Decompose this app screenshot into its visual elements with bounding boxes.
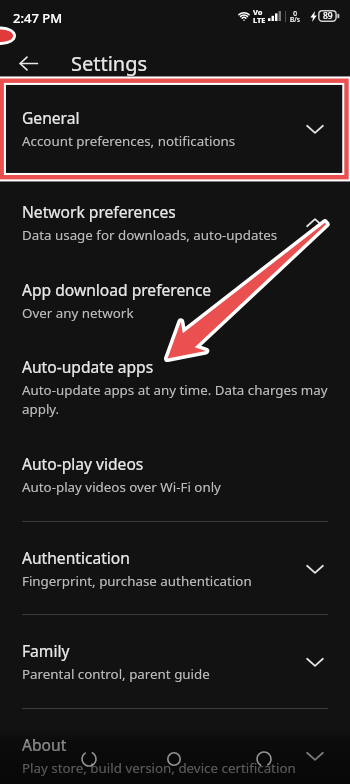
staticText: General [22, 107, 80, 128]
button[interactable]: Back [68, 738, 110, 780]
button[interactable]: Network preferences [0, 201, 350, 244]
staticText: Data usage for downloads, auto-updates [22, 226, 278, 244]
button[interactable]: Family [0, 640, 350, 683]
button[interactable]: Auto-update apps [0, 356, 350, 418]
button[interactable]: About [0, 734, 350, 777]
staticText: Auto-play videos [22, 453, 144, 474]
staticText: 2:47 PM [13, 9, 63, 27]
staticText: Account preferences, notifications [22, 132, 236, 150]
staticText: Settings [71, 50, 148, 77]
staticText: Family [22, 640, 70, 661]
staticText: 89 [323, 10, 333, 22]
staticText: 0 B/s [290, 9, 300, 24]
staticText: Play store, build version, device certif… [22, 759, 296, 777]
staticText: Vo LTE [253, 7, 266, 25]
staticText: Fingerprint, purchase authentication [22, 572, 252, 590]
button[interactable]: App download preference [0, 279, 350, 322]
staticText: Network preferences [22, 201, 176, 222]
staticText: App download preference [22, 279, 212, 300]
button[interactable]: Home [153, 738, 195, 780]
button[interactable]: Back [8, 43, 48, 83]
staticText: Auto-update apps at any time. Data charg… [22, 381, 329, 418]
staticText: Over any network [22, 304, 134, 322]
button[interactable]: General [0, 107, 350, 150]
staticText: Parental control, parent guide [22, 665, 210, 683]
staticText: Auto-play videos over Wi-Fi only [22, 478, 221, 496]
button[interactable]: Authentication [0, 547, 350, 590]
button[interactable]: Auto-play videos [0, 453, 350, 496]
staticText: Auto-update apps [22, 356, 154, 377]
button[interactable]: Recents [243, 738, 285, 780]
staticText: About [22, 734, 67, 755]
staticText: Authentication [22, 547, 130, 568]
